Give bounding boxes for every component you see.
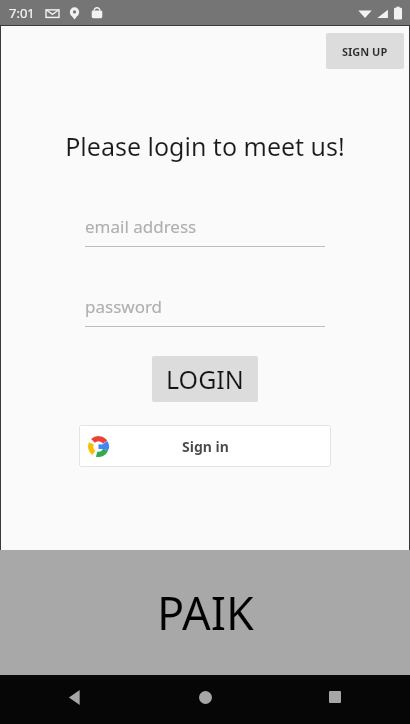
staticText: Sign in (182, 437, 229, 456)
button[interactable]: Recent apps (318, 680, 352, 714)
staticText: LOGIN (166, 362, 244, 396)
button[interactable]: LOGIN (152, 356, 258, 402)
button[interactable]: Home (188, 680, 222, 714)
staticText: email address (85, 215, 197, 238)
button[interactable]: Sign in (79, 425, 331, 467)
staticText: password (85, 295, 163, 318)
staticText: SIGN UP (342, 44, 388, 59)
staticText: PAIK (157, 582, 254, 643)
staticText: 7:01 (9, 4, 35, 22)
button[interactable]: SIGN UP (326, 33, 404, 69)
button[interactable]: email address (85, 215, 325, 247)
staticText: Please login to meet us! (65, 129, 345, 163)
button[interactable]: Back (58, 680, 92, 714)
button[interactable]: password (85, 295, 325, 327)
